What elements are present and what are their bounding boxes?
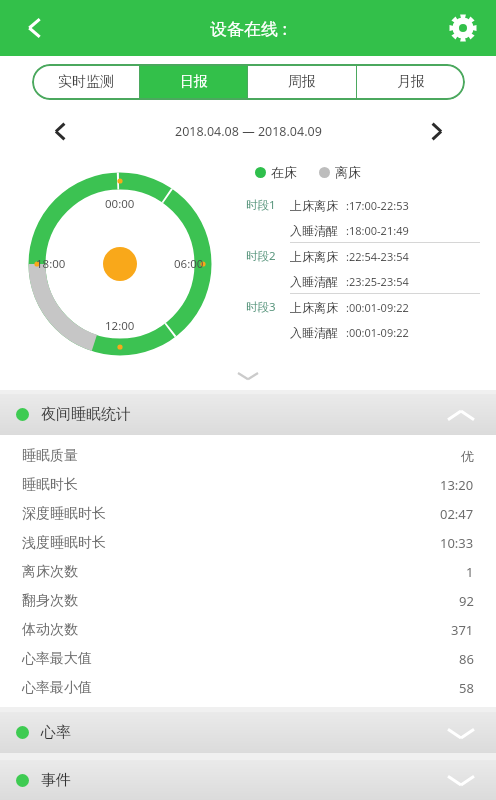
button[interactable]: 日报 <box>140 64 247 100</box>
staticText: 日报 <box>180 73 208 91</box>
staticText: 入睡清醒 <box>290 274 346 289</box>
button[interactable]: 设置 <box>440 5 486 51</box>
button[interactable]: 浅度睡眠时长 <box>0 528 496 557</box>
staticText: 睡眠质量 <box>22 447 78 465</box>
staticText: 58 <box>459 679 474 697</box>
staticText: 1 <box>466 563 474 581</box>
button[interactable]: 深度睡眠时长 <box>0 499 496 528</box>
staticText: :00:01-09:22 <box>346 325 409 340</box>
staticText: 浅度睡眠时长 <box>22 534 106 552</box>
staticText: 在床 <box>271 164 297 180</box>
button[interactable]: 周报 <box>248 64 356 100</box>
staticText: 离床 <box>335 164 361 180</box>
staticText: :23:25-23:54 <box>346 274 409 289</box>
button[interactable]: 事件 <box>0 760 496 800</box>
staticText: 上床离床 <box>290 249 346 264</box>
button[interactable]: 月报 <box>357 64 465 100</box>
button[interactable]: 夜间睡眠统计 <box>0 394 496 435</box>
button[interactable]: 展开更多时段 <box>230 367 266 385</box>
staticText: 月报 <box>397 73 425 91</box>
button[interactable]: 心率 <box>0 712 496 753</box>
staticText: :18:00-21:49 <box>346 223 409 238</box>
staticText: 00:00 <box>105 196 135 212</box>
staticText: 周报 <box>288 73 316 91</box>
staticText: 设备在线 : <box>210 17 287 40</box>
staticText: 06:00 <box>174 256 204 272</box>
staticText: 02:47 <box>440 505 474 523</box>
button[interactable]: 离床次数 <box>0 557 496 586</box>
button[interactable]: 后一天 <box>416 111 456 151</box>
button[interactable]: 体动次数 <box>0 615 496 644</box>
staticText: :00:01-09:22 <box>346 300 409 315</box>
staticText: 心率最大值 <box>22 650 92 668</box>
staticText: 体动次数 <box>22 621 78 639</box>
staticText: 翻身次数 <box>22 592 78 610</box>
staticText: 入睡清醒 <box>290 325 346 340</box>
staticText: 时段1 <box>246 197 290 213</box>
button[interactable]: 心率最小值 <box>0 673 496 702</box>
staticText: 10:33 <box>440 534 474 552</box>
staticText: :22:54-23:54 <box>346 249 409 264</box>
button[interactable]: 睡眠时长 <box>0 470 496 499</box>
staticText: 时段3 <box>246 299 290 315</box>
staticText: 371 <box>451 621 474 639</box>
staticText: :17:00-22:53 <box>346 198 409 213</box>
button[interactable]: 睡眠质量 <box>0 441 496 470</box>
staticText: 离床次数 <box>22 563 78 581</box>
staticText: 心率 <box>41 723 71 742</box>
staticText: 2018.04.08 — 2018.04.09 <box>175 123 322 140</box>
staticText: 13:20 <box>440 476 474 494</box>
staticText: 18:00 <box>36 256 66 272</box>
staticText: 92 <box>459 592 474 610</box>
staticText: 深度睡眠时长 <box>22 505 106 523</box>
staticText: 实时监测 <box>58 73 114 91</box>
staticText: 睡眠时长 <box>22 476 78 494</box>
staticText: 12:00 <box>105 318 135 334</box>
staticText: 心率最小值 <box>22 679 92 697</box>
button[interactable]: 实时监测 <box>32 64 139 100</box>
staticText: 时段2 <box>246 248 290 264</box>
button[interactable]: 前一天 <box>40 111 80 151</box>
staticText: 夜间睡眠统计 <box>41 405 131 424</box>
staticText: 86 <box>459 650 474 668</box>
staticText: 上床离床 <box>290 198 346 213</box>
staticText: 事件 <box>41 771 71 790</box>
staticText: 优 <box>461 448 474 464</box>
button[interactable]: 心率最大值 <box>0 644 496 673</box>
staticText: 上床离床 <box>290 300 346 315</box>
button[interactable]: 返回 <box>12 5 58 51</box>
button[interactable]: 翻身次数 <box>0 586 496 615</box>
staticText: 入睡清醒 <box>290 223 346 238</box>
